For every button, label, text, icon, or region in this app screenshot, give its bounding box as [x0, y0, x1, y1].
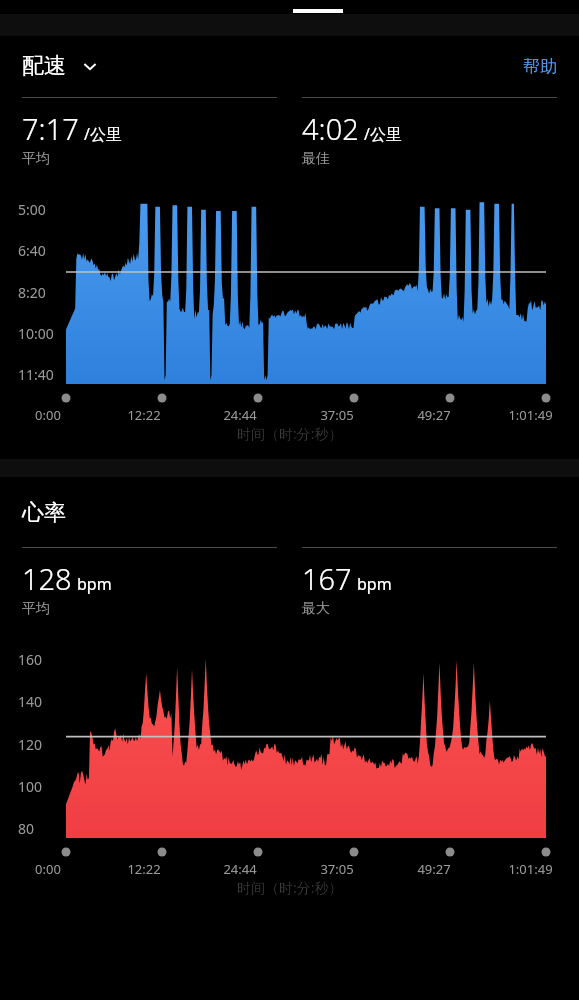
button[interactable]: 心率 — [22, 499, 66, 527]
staticText: 0:00 — [35, 860, 61, 878]
staticText: 7:17 — [22, 109, 79, 148]
button[interactable]: 配速 — [22, 52, 100, 80]
staticText: 1:01:49 — [508, 860, 553, 878]
staticText: 时间（时:分:秒） — [237, 424, 343, 443]
staticText: 37:05 — [320, 860, 354, 878]
staticText: 配速 — [22, 52, 66, 80]
button[interactable]: 4:02 — [302, 97, 557, 168]
staticText: 24:44 — [223, 406, 257, 424]
staticText: 49:27 — [417, 860, 451, 878]
staticText: 49:27 — [417, 406, 451, 424]
staticText: 最佳 — [302, 150, 330, 168]
staticText: 12:22 — [127, 406, 161, 424]
staticText: 100 — [18, 777, 43, 796]
staticText: bpm — [357, 573, 392, 595]
staticText: 1:01:49 — [508, 406, 553, 424]
staticText: 帮助 — [523, 56, 557, 77]
staticText: 最大 — [302, 600, 330, 618]
staticText: 11:40 — [18, 365, 54, 384]
staticText: 4:02 — [302, 109, 359, 148]
staticText: 167 — [302, 559, 352, 598]
staticText: 平均 — [22, 600, 50, 618]
staticText: 心率 — [22, 499, 66, 527]
staticText: 140 — [18, 692, 43, 711]
staticText: 24:44 — [223, 860, 257, 878]
staticText: 0:00 — [35, 406, 61, 424]
button[interactable]: 167 — [302, 547, 557, 618]
staticText: 128 — [22, 559, 72, 598]
staticText: 120 — [18, 735, 43, 754]
staticText: 5:00 — [18, 200, 46, 219]
staticText: 8:20 — [18, 283, 46, 302]
staticText: /公里 — [364, 123, 402, 145]
staticText: 37:05 — [320, 406, 354, 424]
button[interactable]: 7:17 — [22, 97, 277, 168]
staticText: 时间（时:分:秒） — [237, 878, 343, 897]
button[interactable]: 帮助 — [523, 56, 557, 77]
other: Change metric — [80, 56, 100, 76]
staticText: 80 — [18, 819, 35, 838]
staticText: 平均 — [22, 150, 50, 168]
staticText: 6:40 — [18, 241, 46, 260]
staticText: bpm — [77, 573, 112, 595]
staticText: 160 — [18, 650, 43, 669]
staticText: 10:00 — [18, 324, 54, 343]
button[interactable]: 128 — [22, 547, 277, 618]
staticText: /公里 — [84, 123, 122, 145]
staticText: 12:22 — [127, 860, 161, 878]
